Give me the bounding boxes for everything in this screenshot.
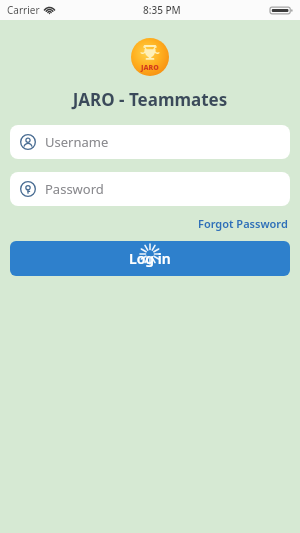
button[interactable]: Forgot Password (196, 214, 290, 233)
button[interactable]: Password (10, 172, 290, 206)
staticText: Carrier (7, 3, 40, 17)
staticText: Forgot Password (198, 216, 288, 231)
button[interactable]: Username (10, 125, 290, 159)
staticText: JARO (141, 63, 159, 73)
staticText: Log in (129, 249, 171, 268)
staticText: Password (45, 180, 104, 198)
staticText: Username (45, 133, 109, 151)
staticText: JARO - Teammates (0, 88, 300, 111)
button[interactable]: Log in (10, 241, 290, 276)
staticText: 8:35 PM (143, 3, 181, 17)
